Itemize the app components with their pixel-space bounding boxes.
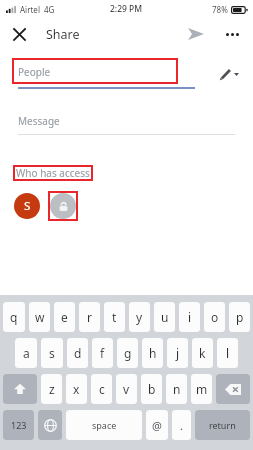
button[interactable]: return: [195, 410, 250, 440]
staticText: u: [161, 309, 169, 325]
staticText: a: [23, 345, 30, 361]
staticText: s: [49, 345, 55, 361]
button[interactable]: Message: [0, 113, 253, 137]
button[interactable]: c: [91, 374, 112, 404]
staticText: t: [112, 309, 117, 325]
staticText: 4G: [44, 4, 55, 15]
staticText: i: [188, 309, 192, 325]
button[interactable]: p: [229, 302, 250, 332]
button[interactable]: z: [41, 374, 62, 404]
staticText: return: [209, 419, 236, 431]
staticText: Who has access: [16, 166, 90, 180]
button[interactable]: a: [15, 338, 37, 368]
staticText: Share: [46, 26, 80, 43]
staticText: k: [199, 345, 206, 361]
staticText: z: [49, 381, 55, 397]
button[interactable]: b: [141, 374, 162, 404]
button[interactable]: v: [116, 374, 137, 404]
staticText: Airtel: [20, 4, 40, 15]
button[interactable]: t: [104, 302, 125, 332]
staticText: v: [123, 381, 130, 397]
button[interactable]: r: [79, 302, 100, 332]
staticText: 123: [11, 419, 27, 431]
staticText: e: [61, 309, 68, 325]
button[interactable]: More options: [218, 20, 246, 48]
staticText: 2:29 PM: [110, 3, 143, 15]
staticText: p: [236, 309, 244, 325]
button[interactable]: u: [154, 302, 175, 332]
button[interactable]: Switch language: [38, 410, 62, 440]
staticText: d: [74, 345, 82, 361]
button[interactable]: Close: [5, 20, 33, 48]
staticText: g: [124, 345, 132, 361]
staticText: space: [92, 419, 117, 431]
staticText: People: [18, 65, 51, 79]
button[interactable]: d: [67, 338, 88, 368]
button[interactable]: k: [192, 338, 213, 368]
staticText: @: [152, 418, 162, 433]
button[interactable]: S: [14, 193, 40, 219]
staticText: 78%: [212, 4, 228, 15]
button[interactable]: [12, 58, 178, 84]
staticText: x: [73, 381, 80, 397]
button[interactable]: Shift: [3, 374, 37, 404]
button[interactable]: o: [204, 302, 225, 332]
staticText: S: [24, 198, 31, 214]
button[interactable]: h: [142, 338, 163, 368]
staticText: w: [35, 309, 45, 325]
button[interactable]: j: [167, 338, 188, 368]
button[interactable]: Private: [50, 193, 76, 219]
button[interactable]: q: [3, 302, 25, 332]
button[interactable]: s: [41, 338, 63, 368]
button[interactable]: x: [66, 374, 87, 404]
button[interactable]: l: [217, 338, 238, 368]
button[interactable]: Backspace: [216, 374, 250, 404]
staticText: y: [136, 309, 143, 325]
staticText: h: [149, 345, 157, 361]
button[interactable]: f: [92, 338, 113, 368]
button[interactable]: Send: [181, 19, 211, 49]
button[interactable]: n: [166, 374, 187, 404]
staticText: m: [196, 381, 208, 397]
staticText: c: [99, 381, 105, 397]
button[interactable]: w: [29, 302, 50, 332]
button[interactable]: @: [146, 410, 168, 440]
button[interactable]: e: [54, 302, 75, 332]
staticText: o: [211, 309, 219, 325]
button[interactable]: space: [66, 410, 142, 440]
staticText: Message: [18, 114, 60, 128]
staticText: f: [100, 345, 105, 361]
button[interactable]: m: [191, 374, 212, 404]
staticText: r: [87, 309, 92, 325]
staticText: l: [226, 345, 230, 361]
button[interactable]: .: [172, 410, 191, 440]
staticText: b: [148, 381, 156, 397]
button[interactable]: g: [117, 338, 138, 368]
staticText: j: [176, 345, 180, 361]
button[interactable]: 123: [3, 410, 34, 440]
button[interactable]: Edit permissions: [215, 60, 243, 88]
button[interactable]: i: [179, 302, 200, 332]
staticText: q: [10, 309, 18, 325]
staticText: n: [173, 381, 181, 397]
button[interactable]: y: [129, 302, 150, 332]
staticText: .: [180, 418, 183, 433]
